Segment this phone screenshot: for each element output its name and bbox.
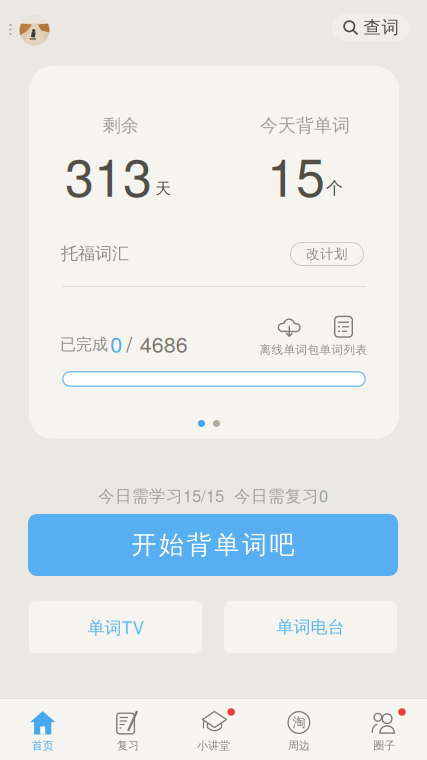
button[interactable]: 圈子: [344, 698, 424, 760]
staticText: 周边: [288, 739, 310, 752]
button[interactable]: 单词电台: [223, 600, 398, 654]
staticText: 圈子: [373, 739, 395, 752]
staticText: 单词TV: [87, 615, 143, 639]
staticText: 改计划: [306, 245, 348, 262]
staticText: 已完成: [60, 334, 108, 355]
staticText: 个: [326, 177, 343, 199]
staticText: 4686: [140, 328, 188, 359]
button[interactable]: 个人中心: [19, 15, 49, 45]
button[interactable]: 改计划: [290, 242, 364, 266]
staticText: 首页: [32, 739, 54, 752]
staticText: 单词电台: [276, 616, 344, 638]
button[interactable]: 离线单词包: [259, 316, 319, 357]
staticText: 今天背单词: [260, 114, 350, 137]
button[interactable]: 开始背单词吧: [28, 514, 398, 576]
staticText: /: [126, 328, 132, 359]
staticText: 天: [155, 179, 171, 198]
staticText: 剩余: [103, 114, 139, 137]
button[interactable]: 单词列表: [319, 316, 367, 357]
button[interactable]: 首页: [3, 698, 83, 760]
staticText: 淘: [292, 714, 305, 731]
staticText: 单词列表: [319, 343, 367, 357]
staticText: 15: [267, 137, 325, 212]
staticText: 0: [110, 328, 122, 359]
staticText: 离线单词包: [259, 343, 319, 357]
staticText: 查词: [363, 16, 399, 38]
staticText: 开始背单词吧: [131, 529, 294, 561]
staticText: 复习: [117, 739, 139, 752]
staticText: 313: [65, 137, 152, 212]
staticText: 托福词汇: [61, 243, 129, 264]
button[interactable]: 淘: [259, 698, 339, 760]
staticText: 小讲堂: [197, 739, 230, 752]
staticText: 今日需学习15/15 今日需复习0: [98, 483, 328, 507]
button[interactable]: 单词TV: [28, 600, 203, 654]
button[interactable]: 查词: [332, 14, 410, 41]
button[interactable]: 小讲堂: [173, 698, 253, 760]
button[interactable]: 复习: [88, 698, 168, 760]
